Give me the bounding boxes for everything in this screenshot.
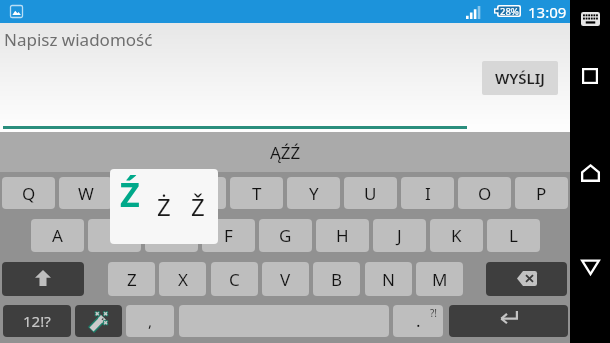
- staticText: .: [416, 309, 421, 332]
- staticText: G: [279, 224, 292, 247]
- staticText: O: [478, 182, 492, 205]
- staticText: L: [509, 224, 518, 247]
- staticText: ?!: [430, 306, 438, 320]
- staticText: N: [382, 268, 395, 291]
- button[interactable]: Shift: [2, 262, 84, 296]
- button[interactable]: S: [88, 219, 141, 252]
- staticText: Y: [309, 182, 319, 205]
- button[interactable]: Home: [570, 105, 610, 241]
- staticText: S: [110, 224, 120, 247]
- staticText: Napisz wiadomość: [4, 28, 153, 51]
- staticText: Z: [127, 268, 137, 291]
- button[interactable]: Period: [393, 305, 443, 337]
- button[interactable]: Hide keyboard: [570, 0, 610, 47]
- button[interactable]: R: [173, 177, 226, 209]
- button[interactable]: ĄŹŹ: [246, 133, 325, 172]
- staticText: Ż: [157, 190, 171, 223]
- button[interactable]: K: [430, 219, 483, 252]
- button[interactable]: P: [515, 177, 568, 209]
- button[interactable]: G: [259, 219, 312, 252]
- button[interactable]: N: [365, 262, 412, 296]
- button[interactable]: H: [316, 219, 369, 252]
- button[interactable]: ,: [126, 305, 174, 337]
- staticText: ,: [148, 311, 153, 331]
- button[interactable]: E: [116, 177, 169, 209]
- staticText: Ź: [120, 171, 140, 217]
- staticText: J: [397, 224, 402, 247]
- button[interactable]: D: [145, 219, 198, 252]
- button[interactable]: A: [31, 219, 84, 252]
- button[interactable]: U: [344, 177, 397, 209]
- staticText: 13:09: [528, 2, 567, 22]
- staticText: D: [165, 224, 178, 247]
- staticText: W: [78, 182, 94, 205]
- staticText: V: [280, 268, 291, 291]
- button[interactable]: X: [159, 262, 206, 296]
- button[interactable]: V: [262, 262, 309, 296]
- button[interactable]: J: [373, 219, 426, 252]
- button[interactable]: Enter: [449, 305, 568, 337]
- staticText: 28%: [500, 5, 519, 17]
- staticText: I: [425, 182, 431, 205]
- button[interactable]: T: [230, 177, 283, 209]
- staticText: P: [536, 182, 547, 205]
- staticText: 12!?: [23, 311, 51, 331]
- button[interactable]: I: [401, 177, 454, 209]
- button[interactable]: 12!?: [3, 305, 71, 337]
- staticText: T: [252, 182, 262, 205]
- button[interactable]: Backspace: [486, 262, 567, 296]
- staticText: H: [336, 224, 349, 247]
- staticText: C: [229, 268, 240, 291]
- staticText: U: [364, 182, 377, 205]
- button[interactable]: L: [487, 219, 540, 252]
- button[interactable]: W: [59, 177, 112, 209]
- button[interactable]: O: [458, 177, 511, 209]
- button[interactable]: C: [211, 262, 258, 296]
- button[interactable]: Magic text: [75, 305, 122, 337]
- button[interactable]: WYŚLIJ: [482, 61, 558, 95]
- button[interactable]: M: [416, 262, 463, 296]
- button[interactable]: F: [202, 219, 255, 252]
- staticText: WYŚLIJ: [495, 68, 545, 88]
- button[interactable]: Q: [2, 177, 55, 209]
- staticText: A: [52, 224, 63, 247]
- staticText: M: [432, 268, 448, 291]
- staticText: K: [451, 224, 462, 247]
- staticText: B: [331, 268, 343, 291]
- button[interactable]: Recents: [570, 47, 610, 105]
- staticText: E: [138, 182, 148, 205]
- staticText: F: [224, 224, 233, 247]
- button[interactable]: Y: [287, 177, 340, 209]
- staticText: X: [178, 268, 188, 291]
- staticText: ĄŹŹ: [270, 141, 301, 164]
- staticText: R: [194, 182, 205, 205]
- button[interactable]: Back: [570, 241, 610, 343]
- staticText: Ž: [191, 190, 205, 223]
- staticText: Q: [22, 182, 36, 205]
- button[interactable]: B: [313, 262, 360, 296]
- button[interactable]: Z: [108, 262, 155, 296]
